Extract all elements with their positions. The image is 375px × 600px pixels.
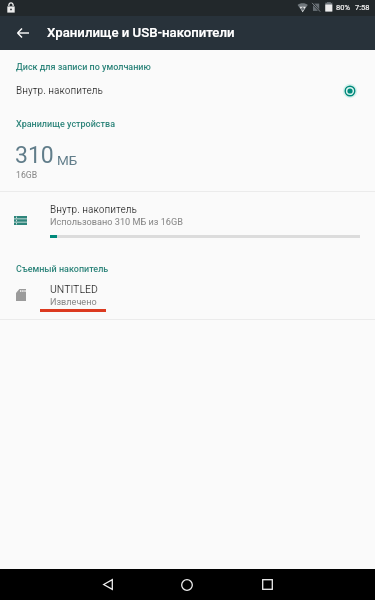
- staticText: 16GB: [16, 170, 38, 180]
- button[interactable]: Home: [157, 569, 217, 600]
- staticText: Использовано 310 МБ из 16GB: [50, 217, 183, 228]
- staticText: Хранилище устройства: [16, 119, 115, 130]
- staticText: Диск для записи по умолчанию: [16, 62, 151, 73]
- staticText: Внутр. накопитель: [50, 204, 137, 216]
- staticText: 80%: [336, 3, 350, 12]
- staticText: МБ: [57, 152, 78, 168]
- button[interactable]: Внутр. накопитель: [0, 196, 375, 244]
- staticText: Съемный накопитель: [16, 264, 109, 275]
- button[interactable]: Back: [0, 16, 45, 50]
- staticText: 7:58: [355, 3, 370, 12]
- staticText: Извлечено: [50, 297, 97, 308]
- button[interactable]: Back: [78, 569, 138, 600]
- staticText: 310: [15, 142, 54, 169]
- staticText: Внутр. накопитель: [16, 85, 351, 97]
- button[interactable]: UNTITLED: [0, 278, 375, 314]
- button[interactable]: Recent apps: [237, 569, 297, 600]
- button[interactable]: Внутр. накопитель: [0, 76, 375, 106]
- staticText: Хранилище и USB-накопители: [47, 25, 235, 40]
- staticText: UNTITLED: [50, 283, 98, 295]
